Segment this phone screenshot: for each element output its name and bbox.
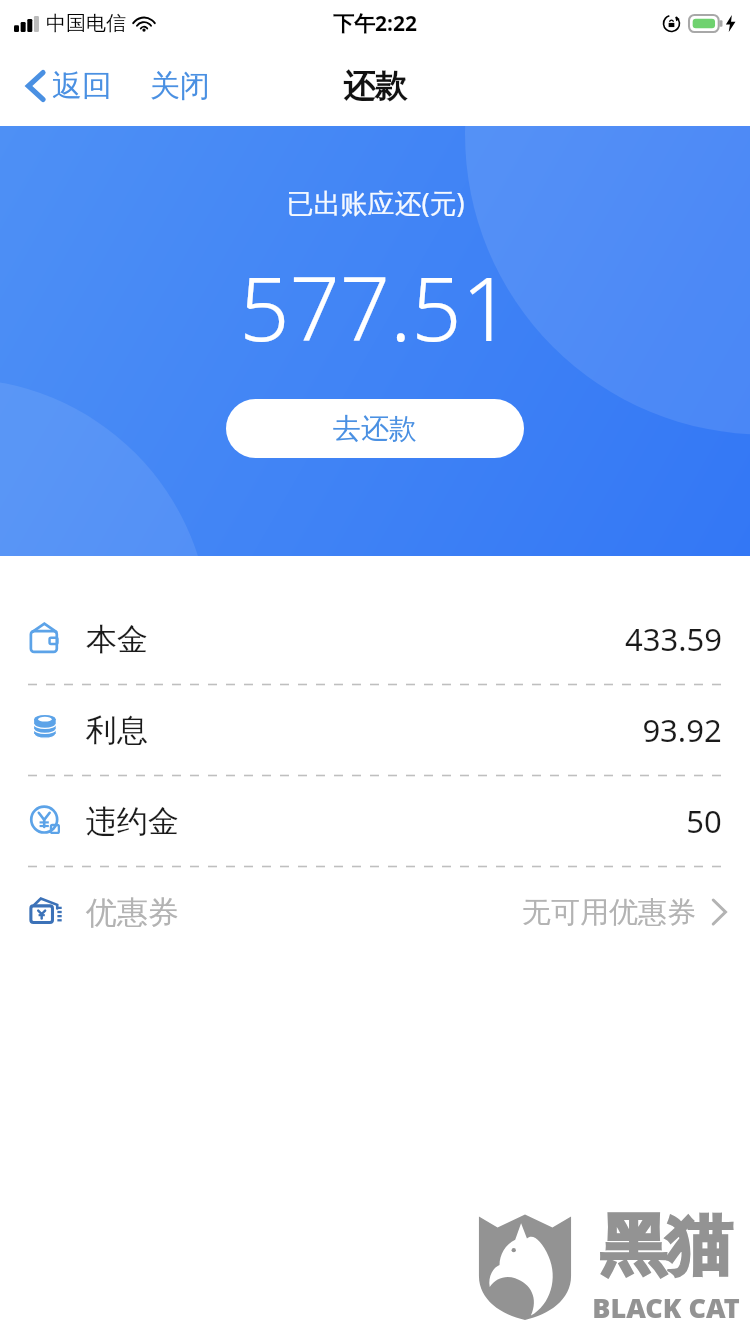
staticText: 本金 (86, 620, 148, 659)
staticText: 下午2:22 (333, 9, 417, 38)
staticText: 关闭 (150, 67, 210, 105)
button[interactable]: 违约金 (0, 776, 750, 866)
staticText: 50 (686, 800, 722, 842)
staticText: 还款 (343, 66, 407, 106)
button[interactable]: 利息 (0, 685, 750, 775)
button[interactable]: 关闭 (144, 61, 216, 111)
staticText: 违约金 (86, 802, 179, 841)
staticText: 无可用优惠券 (522, 894, 696, 931)
staticText: 去还款 (333, 411, 417, 446)
button[interactable]: 返回 (20, 61, 118, 111)
button[interactable]: 本金 (0, 594, 750, 684)
button[interactable]: 优惠券 (0, 867, 750, 957)
staticText: 中国电信 (46, 11, 126, 36)
staticText: 利息 (86, 711, 148, 750)
staticText: 93.92 (642, 709, 722, 751)
button[interactable]: 去还款 (226, 399, 524, 458)
staticText: 返回 (52, 67, 112, 105)
staticText: 黑猫 (600, 1204, 732, 1287)
staticText: 优惠券 (86, 893, 179, 932)
staticText: 已出账应还(元) (286, 184, 465, 221)
staticText: 433.59 (625, 618, 722, 660)
staticText: 577.51 (239, 247, 512, 367)
staticText: BLACK CAT (592, 1289, 740, 1326)
